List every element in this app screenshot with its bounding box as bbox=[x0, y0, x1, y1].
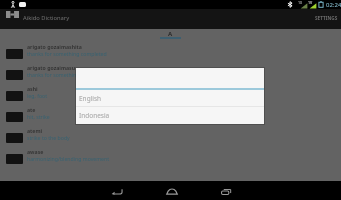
button[interactable]: Back bbox=[104, 182, 130, 200]
button[interactable]: ate bbox=[0, 102, 341, 123]
staticText: 02:24 bbox=[326, 1, 341, 9]
staticText: hit, strike bbox=[27, 113, 50, 120]
staticText: thanks for something bbox=[27, 71, 80, 78]
staticText: A bbox=[168, 30, 173, 38]
staticText: thanks for something completed bbox=[27, 50, 107, 57]
button[interactable]: arigato gozaimashita bbox=[0, 39, 341, 60]
staticText: SETTINGS bbox=[315, 15, 338, 21]
staticText: Indonesia bbox=[79, 111, 110, 120]
button[interactable] bbox=[76, 89, 264, 106]
staticText: Aikido Dictionary bbox=[23, 14, 70, 22]
staticText: strike to the body bbox=[27, 134, 70, 141]
staticText: English bbox=[79, 94, 102, 103]
button[interactable]: awase bbox=[0, 144, 341, 165]
staticText: arigato gozaimasu bbox=[27, 64, 76, 71]
button[interactable]: ashi bbox=[0, 81, 341, 102]
button[interactable] bbox=[76, 107, 264, 124]
staticText: atemi bbox=[27, 127, 43, 134]
button[interactable]: A bbox=[160, 29, 181, 39]
staticText: harmonizing/blending movement bbox=[27, 155, 110, 162]
staticText: awase bbox=[27, 148, 44, 155]
button[interactable]: atemi bbox=[0, 123, 341, 144]
button[interactable]: SETTINGS bbox=[313, 13, 340, 23]
button[interactable]: arigato gozaimasu bbox=[0, 60, 341, 81]
staticText: 1X bbox=[298, 0, 303, 5]
staticText: arigato gozaimashita bbox=[27, 43, 82, 50]
staticText: ashi bbox=[27, 85, 38, 92]
staticText: 1V bbox=[308, 0, 313, 5]
staticText: ate bbox=[27, 106, 36, 113]
button[interactable]: Recent apps bbox=[213, 182, 239, 200]
staticText: leg, foot bbox=[27, 92, 48, 99]
button[interactable]: Home bbox=[159, 182, 185, 200]
